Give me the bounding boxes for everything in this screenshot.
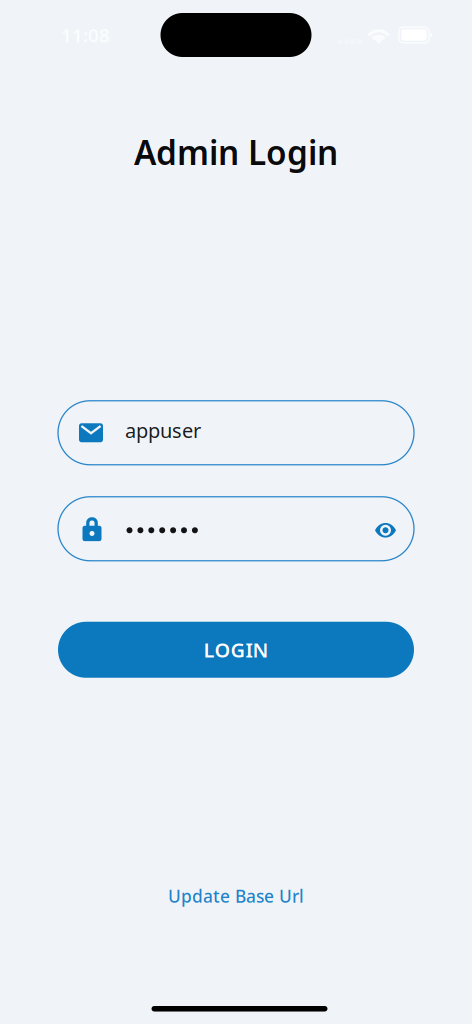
staticText: Admin Login <box>134 130 338 174</box>
button[interactable]: appuser <box>58 401 414 465</box>
staticText: 11:08 <box>61 23 110 47</box>
button[interactable]: Show password <box>362 507 406 551</box>
staticText: LOGIN <box>203 636 268 663</box>
button[interactable]: Update Base Url <box>136 876 336 916</box>
button[interactable]: LOGIN <box>58 622 414 678</box>
staticText: appuser <box>125 417 201 444</box>
button[interactable] <box>58 497 414 561</box>
staticText: Update Base Url <box>168 884 304 907</box>
